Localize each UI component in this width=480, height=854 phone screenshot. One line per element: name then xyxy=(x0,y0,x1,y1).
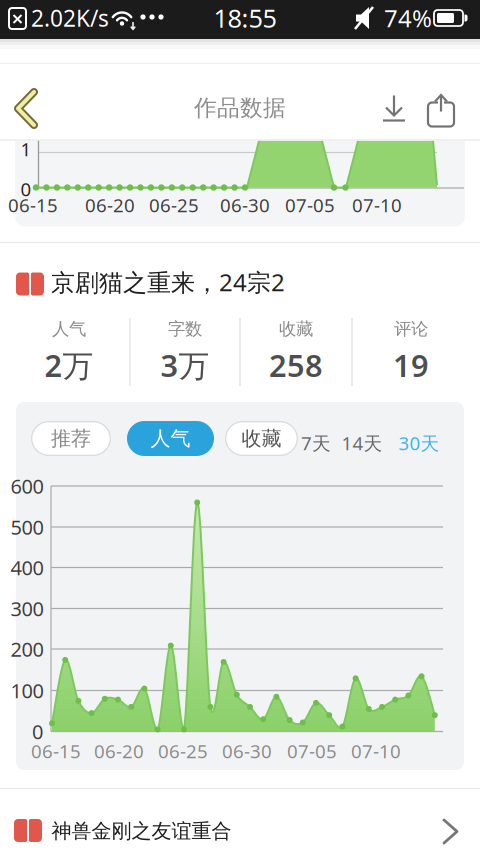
staticText: 18:55 xyxy=(213,1,276,35)
staticText: 14天 xyxy=(341,431,382,455)
staticText: 06-15 xyxy=(31,739,81,763)
staticText: 3万 xyxy=(160,345,209,385)
staticText: 评论 xyxy=(394,318,428,340)
staticText: 0 xyxy=(32,718,43,745)
staticText: 7天 xyxy=(301,431,331,455)
staticText: 字数 xyxy=(168,318,202,340)
staticText: 06-20 xyxy=(85,193,135,217)
button[interactable]: 7天 xyxy=(293,428,339,458)
staticText: 06-30 xyxy=(222,739,272,763)
staticText: 07-10 xyxy=(352,193,402,217)
staticText: 06-25 xyxy=(149,193,199,217)
button[interactable]: 推荐 xyxy=(31,421,111,456)
button[interactable]: 神兽金刚之友谊重合 xyxy=(14,810,466,852)
staticText: 19 xyxy=(393,345,429,385)
staticText: 74% xyxy=(384,2,432,34)
staticText: 07-05 xyxy=(285,193,335,217)
staticText: 0 xyxy=(20,177,31,201)
button[interactable] xyxy=(383,93,405,122)
staticText: 600 xyxy=(10,473,43,499)
staticText: 30天 xyxy=(398,431,439,455)
staticText: 06-30 xyxy=(220,193,270,217)
staticText: 收藏 xyxy=(241,426,281,451)
staticText: 神兽金刚之友谊重合 xyxy=(51,819,231,843)
staticText: 07-05 xyxy=(287,739,337,763)
staticText: 收藏 xyxy=(279,318,313,340)
staticText: 作品数据 xyxy=(194,94,286,122)
staticText: 06-25 xyxy=(158,739,208,763)
staticText: 1 xyxy=(20,137,31,161)
button[interactable]: 14天 xyxy=(333,428,391,458)
staticText: 京剧猫之重来，24宗2 xyxy=(51,266,285,298)
staticText: 300 xyxy=(10,595,43,622)
staticText: 2.02K/s xyxy=(31,3,109,33)
staticText: 100 xyxy=(10,677,43,704)
staticText: 258 xyxy=(269,345,323,385)
button[interactable] xyxy=(428,93,454,126)
button[interactable]: 收藏 xyxy=(225,421,298,456)
staticText: 07-10 xyxy=(351,739,401,763)
staticText: 400 xyxy=(10,554,43,581)
staticText: 人气 xyxy=(52,318,86,340)
staticText: 2万 xyxy=(44,345,93,385)
staticText: 200 xyxy=(10,636,43,662)
button[interactable] xyxy=(8,87,44,130)
staticText: 06-20 xyxy=(94,739,144,763)
staticText: 人气 xyxy=(150,426,190,451)
staticText: 推荐 xyxy=(51,426,91,451)
button[interactable]: 30天 xyxy=(390,428,448,458)
staticText: 06-15 xyxy=(8,193,58,217)
button[interactable]: 人气 xyxy=(127,421,214,456)
staticText: 500 xyxy=(10,514,43,540)
